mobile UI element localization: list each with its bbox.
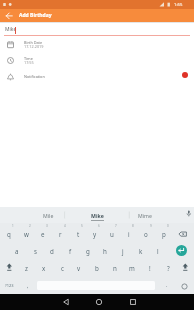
staticText: Add Birthday [19,12,52,19]
staticText: q [7,230,11,238]
button[interactable]: h [97,244,113,258]
staticText: z [25,264,28,272]
staticText: Mike [5,26,17,33]
button[interactable]: f [62,244,78,258]
staticText: u [110,230,114,238]
button[interactable] [182,72,188,78]
button[interactable]: l [150,244,166,258]
staticText: Birth Date [24,40,43,45]
staticText: Mime [138,212,152,219]
button[interactable]: s [27,244,43,258]
staticText: 6 [98,224,100,228]
staticText: ? [167,264,170,272]
staticText: t [77,230,80,238]
button[interactable]: o [138,227,154,241]
staticText: h [103,247,107,255]
staticText: l [157,247,159,255]
staticText: 9 [150,224,152,228]
staticText: ! [149,264,151,272]
button[interactable]: w [18,227,34,241]
staticText: , [27,282,29,289]
staticText: 17:55 [24,60,34,65]
button[interactable]: j [115,244,131,258]
staticText: b [95,264,99,272]
staticText: x [42,264,46,272]
button[interactable]: r [52,227,68,241]
staticText: v [77,264,81,272]
staticText: k [139,247,143,255]
staticText: s [34,247,37,255]
staticText: Mile [43,212,54,219]
staticText: g [86,247,90,255]
button[interactable]: Time [0,55,194,68]
button[interactable]: g [80,244,96,258]
staticText: e [41,230,45,238]
button[interactable] [176,245,187,256]
button[interactable]: v [71,261,87,275]
staticText: 1 [12,224,14,228]
button[interactable]: Mime [137,208,153,222]
staticText: . [166,281,168,288]
staticText: r [59,230,62,238]
button[interactable]: b [89,261,105,275]
button[interactable]: , [20,278,36,292]
staticText: i [128,230,130,238]
button[interactable]: n [107,261,123,275]
staticText: 5 [81,224,83,228]
button[interactable] [6,263,13,272]
button[interactable]: ! [142,261,158,275]
staticText: ?123 [5,283,14,288]
staticText: 4 [64,224,66,228]
staticText: Notification [24,74,45,79]
button[interactable]: . [159,277,175,291]
staticText: p [162,230,166,238]
staticText: 2 [29,224,31,228]
staticText: n [113,264,117,272]
staticText: 1:55 [174,2,183,8]
button[interactable]: k [133,244,149,258]
button[interactable]: m [124,261,140,275]
staticText: 0 [167,224,169,228]
button[interactable]: ? [160,261,176,275]
staticText: m [129,264,135,272]
button[interactable]: d [44,244,60,258]
button[interactable] [181,283,188,290]
staticText: 17.12.2019 [24,44,44,49]
button[interactable] [4,11,14,21]
button[interactable]: p [156,227,172,241]
button[interactable]: Mile [40,208,56,222]
staticText: y [93,230,97,238]
button[interactable] [61,298,71,306]
button[interactable]: Mike [89,208,105,222]
button[interactable]: c [54,261,70,275]
staticText: f [69,247,72,255]
button[interactable] [128,298,138,306]
staticText: j [122,247,124,255]
staticText: 7 [115,224,117,228]
button[interactable] [178,231,188,238]
staticText: Mike [91,212,104,219]
button[interactable]: q [1,227,17,241]
button[interactable]: t [70,227,86,241]
button[interactable]: u [104,227,120,241]
button[interactable]: a [9,244,25,258]
staticText: 8 [132,224,134,228]
button[interactable] [94,298,104,306]
staticText: c [61,264,64,272]
button[interactable]: Notification [0,72,194,83]
button[interactable] [182,263,189,272]
staticText: d [50,247,54,255]
staticText: Time [24,56,33,61]
button[interactable]: Birth Date [0,39,194,52]
button[interactable]: y [87,227,103,241]
button[interactable]: x [36,261,52,275]
button[interactable]: e [35,227,51,241]
button[interactable]: z [18,261,34,275]
staticText: w [24,230,29,238]
button[interactable]: i [121,227,137,241]
staticText: o [144,230,148,238]
staticText: 3 [46,224,48,228]
staticText: a [15,247,19,255]
